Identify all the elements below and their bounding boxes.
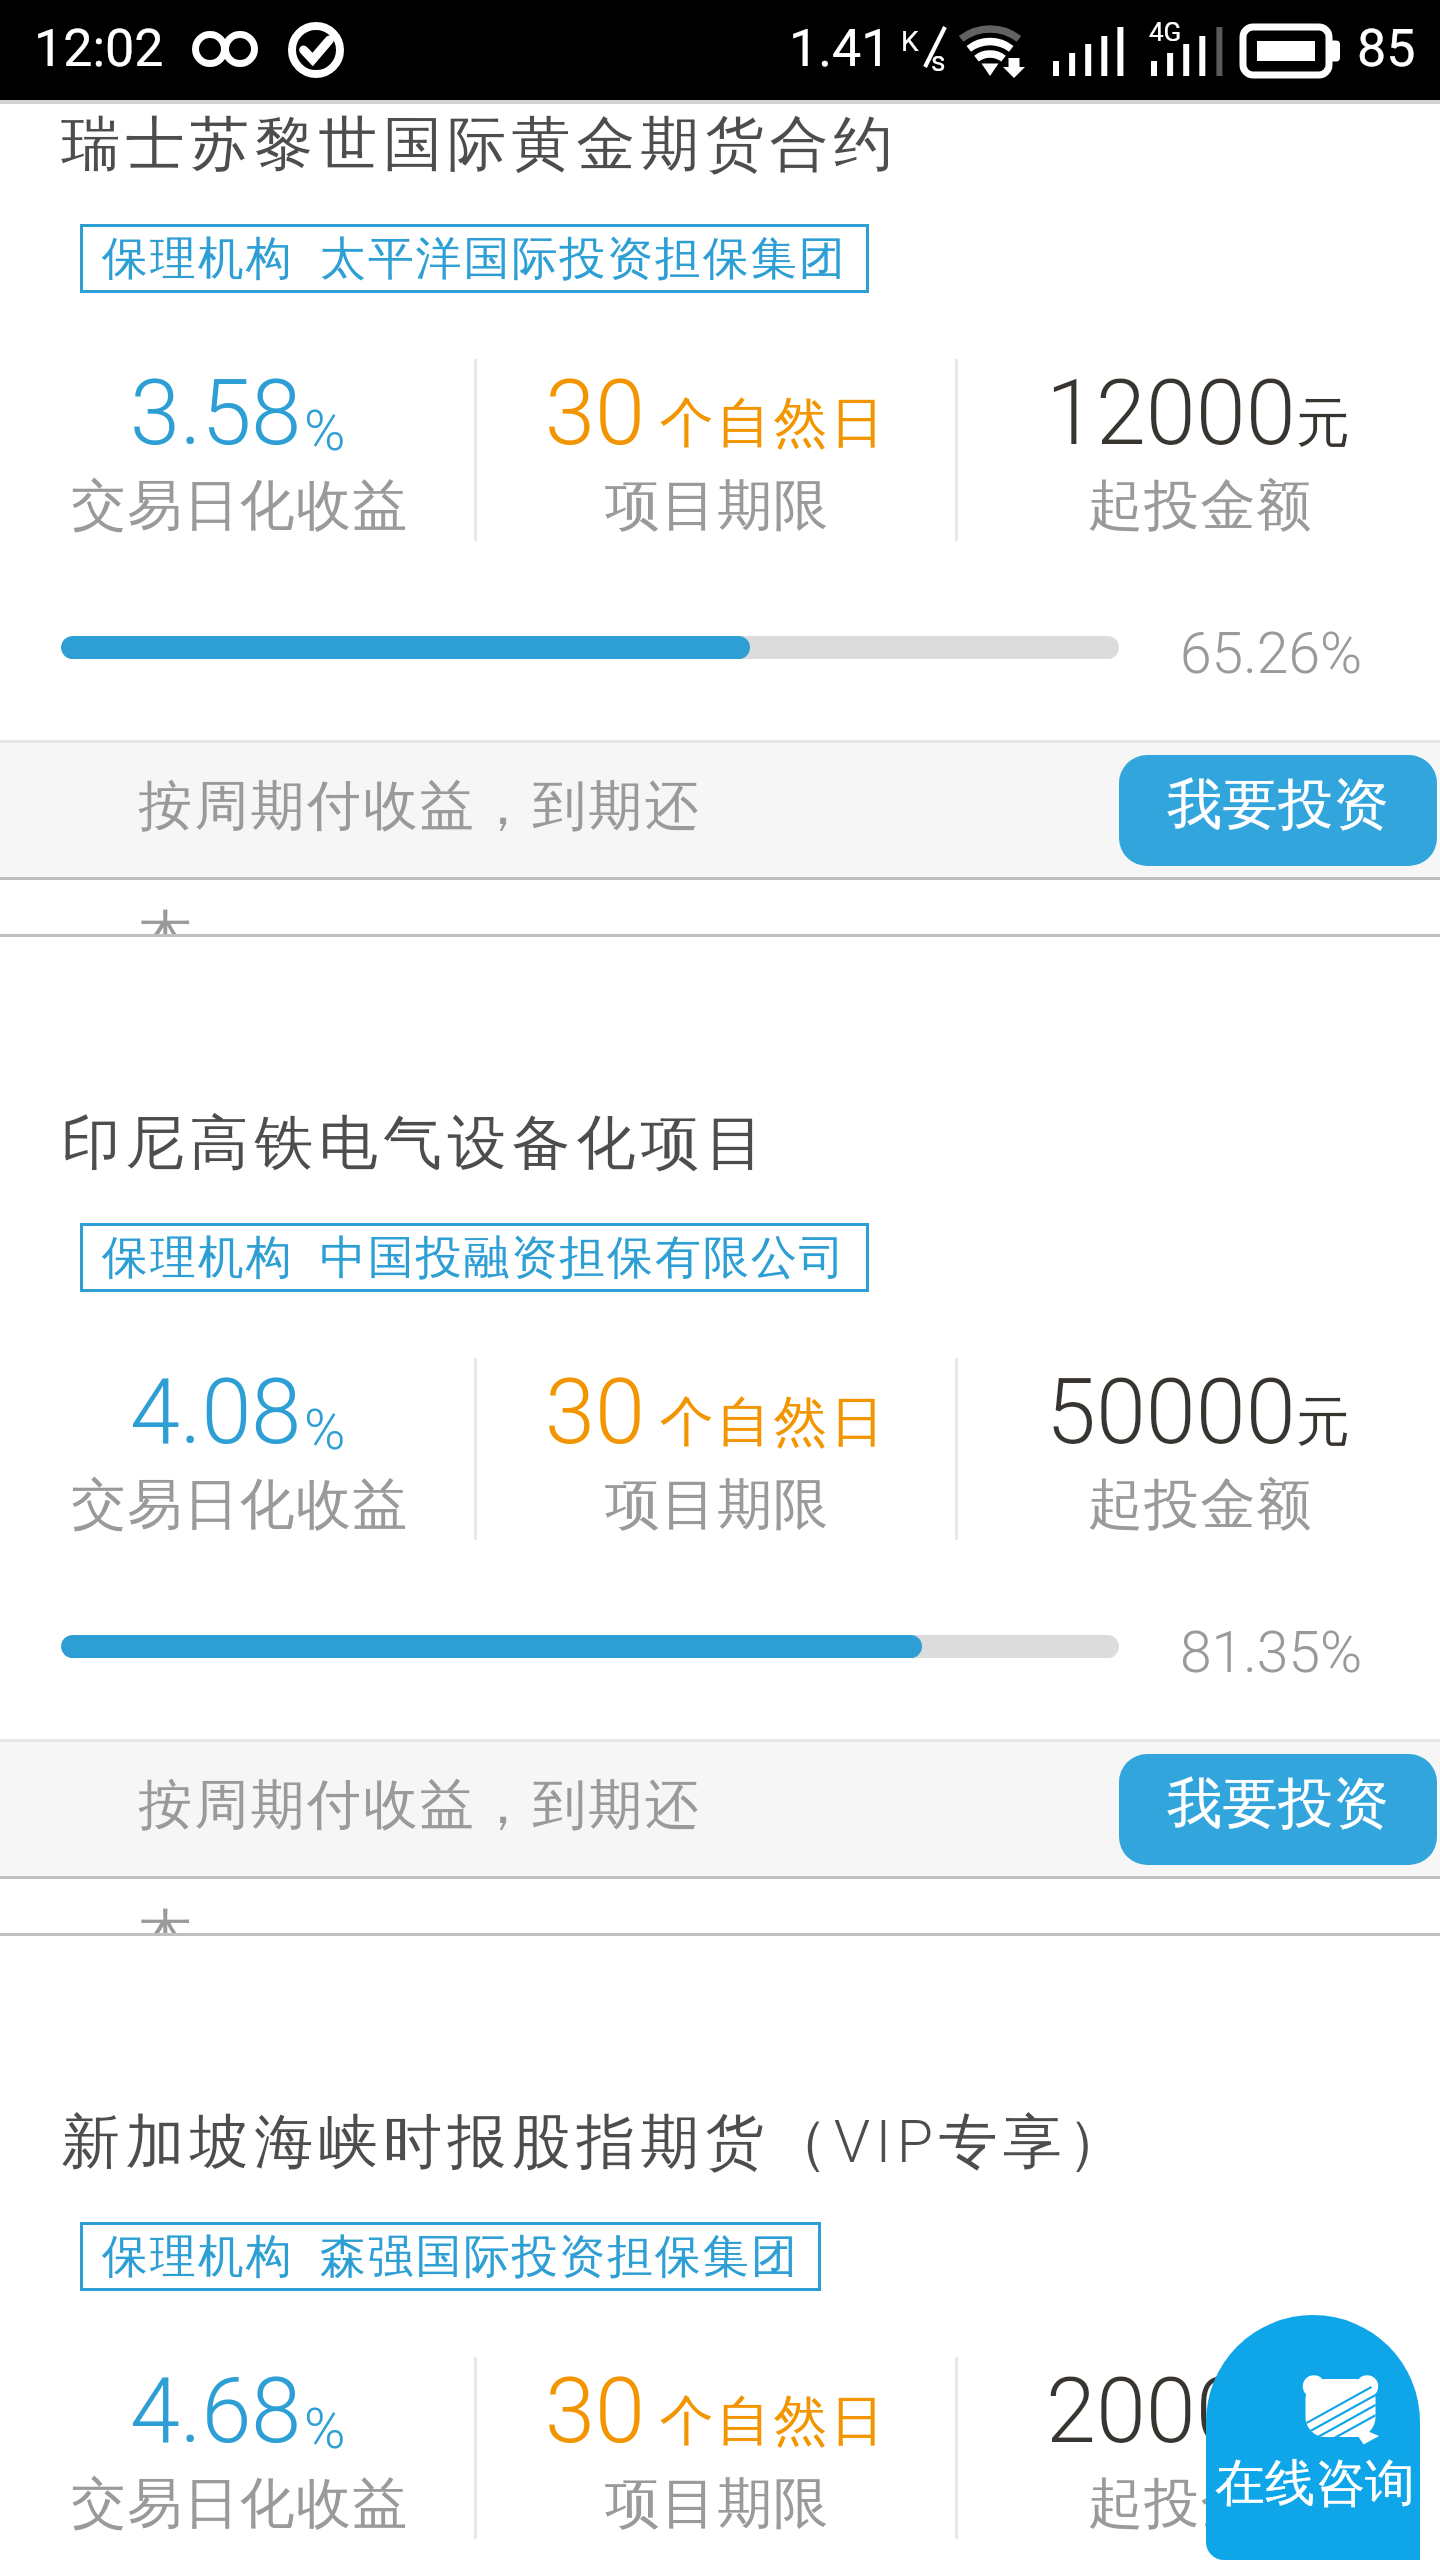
staticText: 元 [1296, 389, 1350, 457]
staticText: 保理机构 中国投融资担保有限公司 [102, 1229, 847, 1287]
staticText: 3.58 [130, 361, 302, 466]
staticText: 个自然日 [658, 1388, 886, 1456]
staticText: 保理机构 太平洋国际投资担保集团 [102, 230, 847, 288]
staticText: 30 [545, 1360, 645, 1465]
staticText: 12:02 [34, 18, 164, 79]
staticText: 85 [1357, 18, 1416, 79]
staticText: 我要投资 [1167, 770, 1389, 839]
staticText: 项目期限 [605, 471, 830, 540]
staticText: 交易日化收益 [71, 1470, 409, 1539]
staticText: 65.26% [1180, 620, 1363, 687]
staticText: 元 [1296, 2387, 1350, 2455]
staticText: K [901, 25, 919, 58]
staticText: 30 [545, 361, 645, 466]
staticText: 起投金额 [1088, 1470, 1313, 1539]
staticText: 50000 [1046, 1360, 1296, 1465]
staticText: 20000 [1046, 2359, 1296, 2464]
staticText: 交易日化收益 [71, 471, 409, 540]
staticText: 30 [545, 2359, 645, 2464]
staticText: 12000 [1046, 361, 1296, 466]
staticText: 按周期付收益，到期还 [137, 1771, 700, 1839]
staticText: 个自然日 [658, 2387, 886, 2455]
staticText: 81.35% [1180, 1619, 1363, 1686]
staticText: 本 [139, 902, 196, 937]
staticText: 交易日化收益 [71, 2469, 409, 2538]
staticText: 印尼高铁电气设备化项目 [61, 1106, 770, 1180]
staticText: 新加坡海峡时报股指期货（VIP专享） [61, 2105, 1132, 2179]
button[interactable]: 按周期付收益，到期还 [0, 743, 1440, 877]
button[interactable]: 在线咨询 [1206, 2315, 1420, 2560]
staticText: 按周期付收益，到期还 [137, 772, 700, 840]
staticText: 起投金额 [1088, 2469, 1313, 2538]
staticText: 元 [1296, 1388, 1350, 1456]
staticText: 瑞士苏黎世国际黄金期货合约 [61, 107, 899, 181]
button[interactable]: 我要投资 [1119, 1754, 1437, 1865]
button[interactable]: 按周期付收益，到期还 [0, 1742, 1440, 1876]
staticText: 项目期限 [605, 1470, 830, 1539]
staticText: 本 [139, 1901, 196, 1936]
staticText: 4.08 [130, 1360, 302, 1465]
staticText: 个自然日 [658, 389, 886, 457]
staticText: 我要投资 [1167, 1769, 1389, 1838]
staticText: % [304, 1397, 346, 1463]
staticText: % [304, 2396, 346, 2462]
staticText: 4.68 [130, 2359, 302, 2464]
staticText: 4G [1149, 17, 1182, 47]
button[interactable]: 我要投资 [1119, 755, 1437, 866]
staticText: 在线咨询 [1215, 2452, 1415, 2515]
staticText: 1.41 [789, 18, 891, 79]
staticText: 项目期限 [605, 2469, 830, 2538]
staticText: % [304, 398, 346, 464]
staticText: 保理机构 森强国际投资担保集团 [102, 2228, 799, 2286]
staticText: 起投金额 [1088, 471, 1313, 540]
staticText: s [931, 45, 946, 78]
